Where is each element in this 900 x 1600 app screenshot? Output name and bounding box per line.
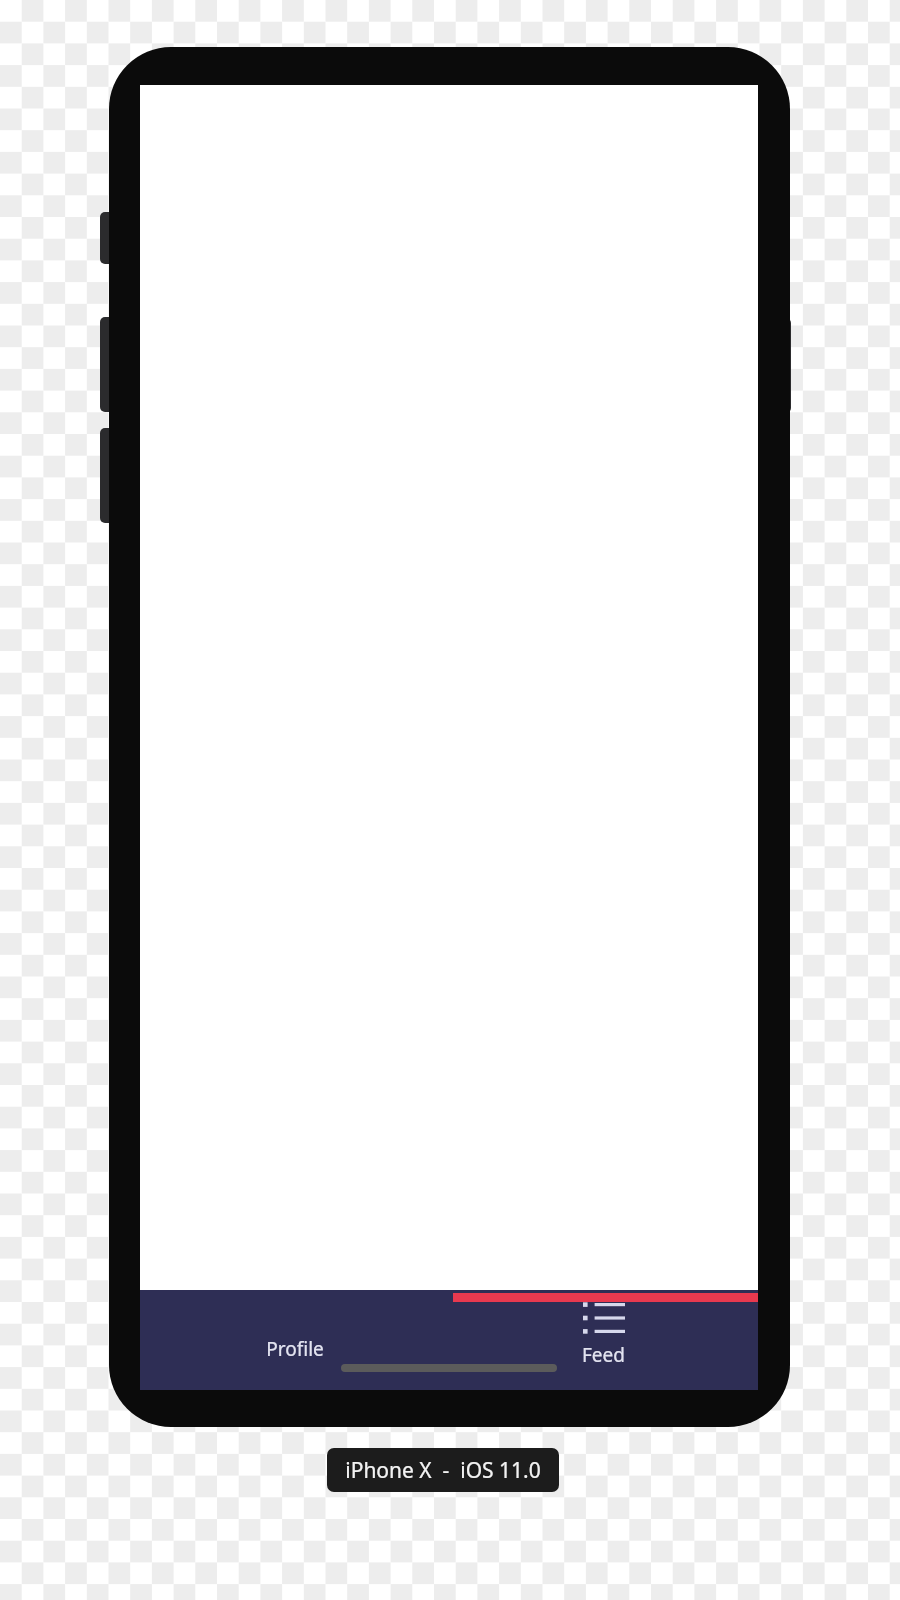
button[interactable]: Profile bbox=[140, 1290, 449, 1390]
staticText: Profile bbox=[266, 1336, 324, 1362]
button[interactable]: Feed list bbox=[449, 1290, 758, 1390]
staticText: Feed bbox=[582, 1342, 625, 1368]
staticText: iPhone X - iOS 11.0 bbox=[345, 1456, 541, 1485]
other: Feed list bbox=[583, 1303, 625, 1333]
